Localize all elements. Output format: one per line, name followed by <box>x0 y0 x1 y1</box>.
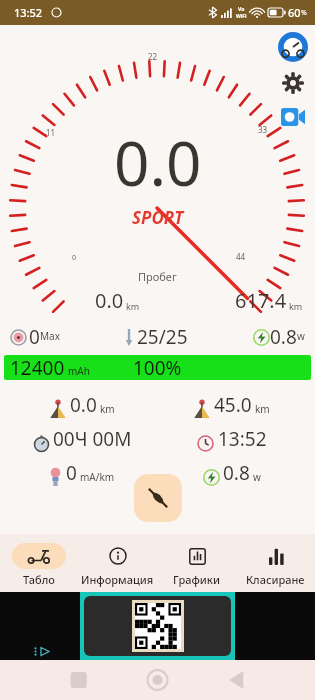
staticText: 33 <box>258 124 268 135</box>
staticText: 0.0 <box>70 392 97 418</box>
button[interactable]: 45.0 <box>157 392 307 418</box>
staticText: w <box>297 329 305 343</box>
button[interactable]: Settings <box>279 69 307 97</box>
staticText: 0.8 <box>223 460 250 486</box>
staticText: Класиране <box>246 572 305 587</box>
staticText: 00Ч 00М <box>53 426 132 452</box>
staticText: WiFi <box>236 13 247 20</box>
staticText: km <box>289 300 303 312</box>
button[interactable]: 0.8 <box>157 460 307 486</box>
button[interactable]: Connect <box>134 474 182 522</box>
staticText: km <box>126 300 140 312</box>
button[interactable]: 0 <box>8 460 157 486</box>
staticText: 0.8 <box>270 324 297 350</box>
staticText: 0 <box>29 324 40 350</box>
staticText: % <box>301 8 307 18</box>
staticText: Пробег <box>138 269 177 284</box>
staticText: Графики <box>173 572 220 587</box>
staticText: 13:52 <box>14 5 43 20</box>
staticText: 0 <box>66 460 77 486</box>
button[interactable]: Scooter dashboard <box>277 31 309 63</box>
button[interactable]: 12400 <box>4 355 311 380</box>
button[interactable]: Класиране <box>236 538 315 592</box>
staticText: 0.0 <box>95 287 124 314</box>
button[interactable] <box>84 596 231 656</box>
button[interactable]: Camera <box>279 103 307 131</box>
staticText: Информация <box>81 572 154 587</box>
staticText: km <box>100 402 115 416</box>
staticText: SPORT <box>132 206 184 229</box>
staticText: 100% <box>133 355 182 380</box>
staticText: 45.0 <box>214 392 252 418</box>
staticText: 25/25 <box>137 324 188 350</box>
staticText: 22 <box>148 51 158 62</box>
staticText: mA/km <box>80 470 115 484</box>
button[interactable]: Информация <box>78 538 157 592</box>
staticText: mAh <box>68 364 90 378</box>
staticText: 617.4 <box>235 287 287 314</box>
button[interactable]: 13:52 <box>157 426 307 452</box>
staticText: Max <box>40 329 60 343</box>
staticText: km <box>255 402 270 416</box>
staticText: 60 <box>288 5 301 20</box>
staticText: w <box>253 470 261 484</box>
staticText: 0.0 <box>114 120 202 204</box>
staticText: 13:52 <box>218 426 267 452</box>
staticText: Vo <box>238 6 245 13</box>
staticText: 12400 <box>10 355 65 380</box>
button[interactable]: 00Ч 00М <box>8 426 157 452</box>
button[interactable]: Табло <box>0 538 78 592</box>
staticText: 11 <box>46 127 56 138</box>
staticText: 0 <box>72 253 77 263</box>
staticText: 44 <box>236 251 246 262</box>
button[interactable]: 0.0 <box>8 392 157 418</box>
button[interactable]: Графики <box>157 538 236 592</box>
staticText: Табло <box>23 572 55 587</box>
